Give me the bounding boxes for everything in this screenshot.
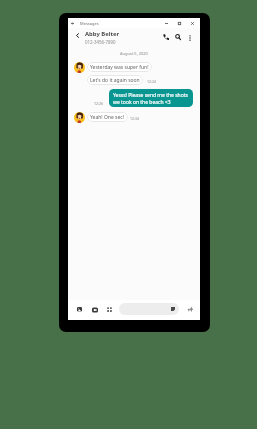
button[interactable]: Yesterday was super fun! [87,62,152,72]
button[interactable]: Minimize [162,19,170,27]
button[interactable]: Maximize [175,19,183,27]
button[interactable]: Abby Belter avatar [74,62,85,73]
button[interactable]: Voice [186,305,195,314]
button[interactable]: Camera [90,305,99,314]
staticText: Abby Belter [85,30,120,38]
button[interactable]: Message input [119,303,179,315]
button[interactable]: Let's do it again soon [87,75,143,85]
staticText: Messages [80,21,99,26]
staticText: Yeah! One sec! [90,114,125,121]
staticText: 012-3456-7890 [85,39,116,45]
button[interactable]: Yesss! Please send me the shots we took … [109,89,193,107]
staticText: 12:34 [130,116,139,121]
staticText: 12:26 [94,101,103,106]
button[interactable]: More options [184,32,195,43]
button[interactable]: Call [160,31,171,42]
button[interactable]: Gallery [75,305,84,314]
staticText: Yesss! Please send me the shots we took … [113,92,188,105]
button[interactable]: Search [172,31,183,42]
staticText: Let's do it again soon [90,77,140,84]
staticText: August 5, 2020 [120,51,148,56]
staticText: 12:24 [147,79,156,84]
button[interactable]: Yeah! One sec! [87,112,128,122]
staticText: Yesterday was super fun! [90,64,149,71]
button[interactable]: Abby Belter avatar [74,112,85,123]
button[interactable]: Back [72,30,83,41]
button[interactable]: Apps [105,305,114,314]
button[interactable]: Close [188,19,196,27]
button[interactable]: Back [68,19,76,27]
